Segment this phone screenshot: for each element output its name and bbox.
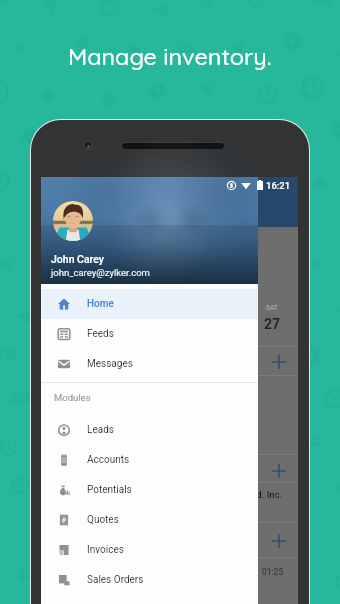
- button[interactable]: Messages: [41, 349, 258, 379]
- staticText: Leads: [87, 424, 114, 436]
- staticText: Manage inventory.: [68, 42, 272, 71]
- staticText: 16:21: [266, 180, 291, 191]
- staticText: Modules: [54, 392, 91, 403]
- staticText: Invoices: [87, 544, 124, 556]
- staticText: Quotes: [87, 514, 119, 526]
- button[interactable]: Accounts: [41, 445, 258, 475]
- button[interactable]: Quotes: [41, 505, 258, 535]
- staticText: Messages: [87, 358, 133, 370]
- button[interactable]: Home: [41, 289, 258, 319]
- button[interactable]: Leads: [41, 415, 258, 445]
- staticText: 27: [264, 316, 281, 332]
- button[interactable]: Potentials: [41, 475, 258, 505]
- button[interactable]: Invoices: [41, 535, 258, 565]
- staticText: Potentials: [87, 484, 132, 496]
- staticText: Sales Orders: [87, 574, 144, 586]
- staticText: Ltd. Inc.: [248, 489, 283, 500]
- staticText: John Carey: [51, 253, 104, 265]
- staticText: Accounts: [87, 454, 130, 466]
- button[interactable]: Sales Orders: [41, 565, 258, 595]
- staticText: 01:25: [262, 567, 284, 577]
- staticText: Feeds: [87, 328, 114, 340]
- staticText: Home: [87, 298, 114, 310]
- staticText: john_carey@zylker.com: [51, 267, 150, 278]
- staticText: SAT: [266, 304, 278, 312]
- button[interactable]: Feeds: [41, 319, 258, 349]
